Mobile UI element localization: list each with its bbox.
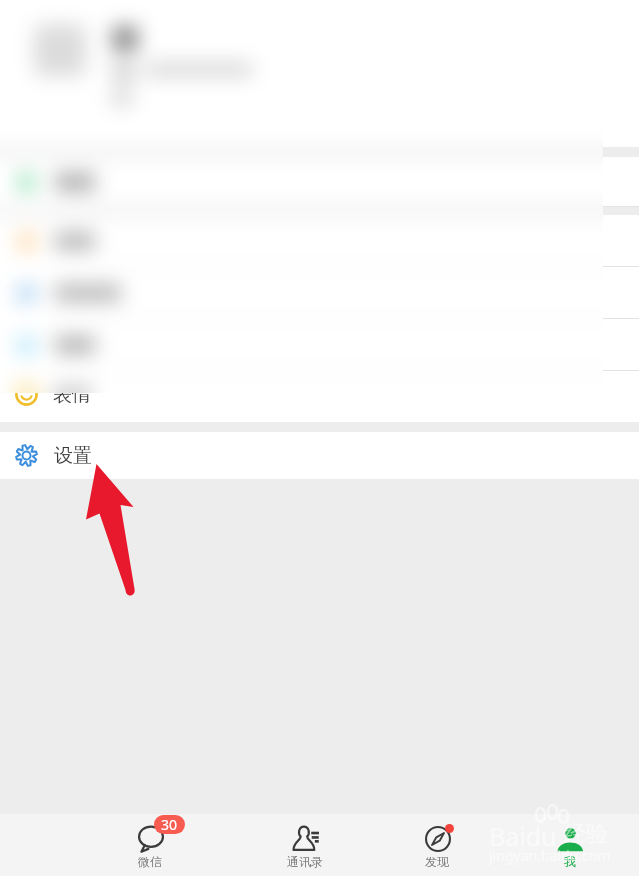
staticText: jingyan.baidu.com — [489, 846, 611, 865]
staticText: 30 — [161, 815, 178, 834]
staticText: 经验 — [564, 820, 608, 848]
button[interactable]: 发现 — [377, 814, 497, 876]
staticText: 通讯录 — [287, 854, 323, 869]
button[interactable]: 我 — [510, 814, 630, 876]
button[interactable]: 通讯录 — [245, 814, 365, 876]
staticText: 表情 — [53, 393, 91, 407]
staticText: 我 — [564, 854, 576, 869]
staticText: 发现 — [425, 854, 449, 869]
staticText: 微信 — [138, 854, 162, 869]
button[interactable]: 设置 — [0, 432, 639, 479]
staticText: 设置 — [54, 444, 92, 468]
button[interactable]: 30 — [90, 814, 210, 876]
staticText: 表情 — [53, 383, 91, 393]
button[interactable]: 表情 — [0, 393, 639, 422]
